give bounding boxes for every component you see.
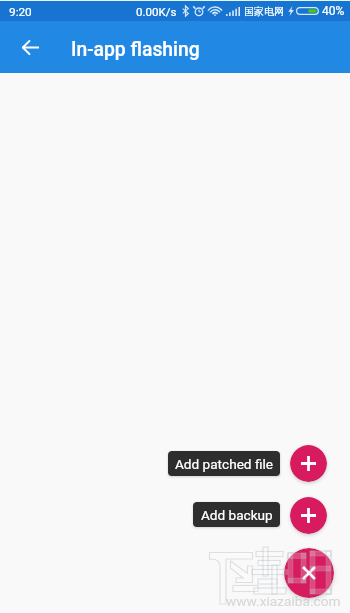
staticText: 40% [322, 4, 345, 18]
staticText: Add backup [201, 507, 273, 523]
staticText: In-app flashing [71, 38, 200, 61]
staticText: 国家电网 [244, 5, 284, 18]
staticText: 0.00K/s [136, 5, 177, 18]
button[interactable]: Add patched file [168, 451, 280, 476]
button[interactable]: Add backup [290, 497, 327, 534]
button[interactable]: Add backup [193, 502, 280, 527]
staticText: Add patched file [175, 456, 273, 472]
staticText: 9:20 [9, 5, 32, 19]
button[interactable]: Add patched file [290, 445, 327, 482]
button[interactable]: Close menu [284, 548, 334, 598]
staticText: www.xiazaiba.com [226, 593, 341, 609]
button[interactable]: Back [14, 31, 46, 63]
